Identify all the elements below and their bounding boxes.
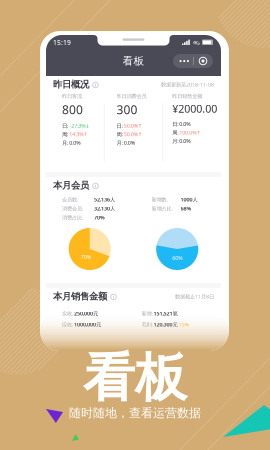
staticText: 新增数: xyxy=(151,196,167,203)
staticText: 4G xyxy=(193,39,200,46)
staticText: 300 xyxy=(117,102,138,117)
staticText: 数据更新至2018-11-08 xyxy=(161,81,214,88)
staticText: 800 xyxy=(62,102,83,117)
staticText: 消费会员: xyxy=(62,205,83,212)
staticText: 250,000元 xyxy=(74,310,98,317)
staticText: 周: xyxy=(62,131,68,138)
staticText: 新增: xyxy=(141,310,152,317)
staticText: 新增占比: xyxy=(151,205,172,212)
staticText: 实收: xyxy=(62,310,73,317)
staticText: 0.0% xyxy=(69,139,80,146)
staticText: 本月会员 xyxy=(53,180,89,191)
staticText: 昨日销售金额 xyxy=(172,93,202,100)
staticText: 1000人 xyxy=(180,196,197,203)
staticText: 月: xyxy=(117,139,123,146)
staticText: 14.3%↑ xyxy=(69,131,87,138)
staticText: 月: xyxy=(62,139,68,146)
staticText: 日: xyxy=(172,120,178,127)
staticText: 数据截止11月8日 xyxy=(175,293,214,300)
staticText: 看板 xyxy=(122,54,144,67)
staticText: 本月销售金额 xyxy=(53,291,107,302)
staticText: 月: xyxy=(172,137,178,144)
staticText: 15:19 xyxy=(53,38,71,47)
staticText: 0.0% xyxy=(124,139,135,146)
staticText: 52,136人 xyxy=(94,196,115,203)
staticText: 消费占比: xyxy=(62,214,83,221)
staticText: 1000,000元 xyxy=(74,321,101,328)
staticText: 32,130人 xyxy=(94,205,115,212)
staticText: 15% xyxy=(177,321,188,328)
staticText: 70% xyxy=(94,214,105,221)
staticText: 应收: xyxy=(62,321,73,328)
staticText: 看板 xyxy=(83,346,187,410)
staticText: 70% xyxy=(81,253,91,261)
staticText: 周: xyxy=(117,131,123,138)
staticText: 151,521笔 xyxy=(153,310,177,317)
staticText: 日: xyxy=(117,122,123,129)
staticText: 50.0%↑ xyxy=(124,131,142,138)
staticText: 0.0% xyxy=(179,137,190,144)
staticText: 会员数: xyxy=(62,196,78,203)
staticText: 周: xyxy=(172,129,178,136)
staticText: 随时随地，查看运营数据 xyxy=(69,406,201,420)
staticText: 60% xyxy=(172,254,182,262)
staticText: 100.0%↑ xyxy=(179,129,200,136)
staticText: 68% xyxy=(180,205,191,212)
staticText: 50.0%↑ xyxy=(124,122,142,129)
staticText: 120,300元 xyxy=(153,321,177,328)
button[interactable]: More xyxy=(173,54,213,68)
staticText: 日: xyxy=(62,122,68,129)
staticText: 昨日客流 xyxy=(62,93,82,100)
staticText: 昨日消费会员 xyxy=(117,93,147,100)
staticText: 昨日概况 xyxy=(53,79,89,90)
staticText: -27.3%↓ xyxy=(69,122,89,129)
staticText: ¥2000.00 xyxy=(172,102,217,116)
staticText: 0.0% xyxy=(179,120,190,127)
staticText: 毛利: xyxy=(141,321,152,328)
